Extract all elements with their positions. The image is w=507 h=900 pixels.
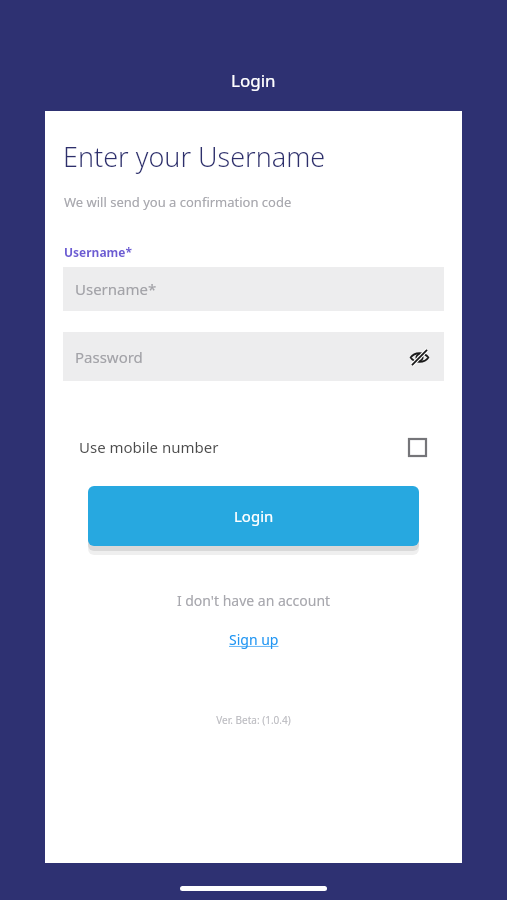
button[interactable]: Password	[63, 332, 444, 381]
staticText: Password	[75, 347, 143, 367]
button[interactable]: Username*	[63, 267, 444, 311]
staticText: Sign up	[229, 630, 279, 649]
button[interactable]: Sign up	[223, 628, 285, 651]
staticText: We will send you a confirmation code	[64, 193, 292, 211]
button[interactable]: Login	[88, 486, 419, 546]
staticText: I don't have an account	[45, 591, 462, 610]
staticText: Enter your Username	[63, 138, 326, 175]
staticText: Use mobile number	[79, 437, 219, 457]
staticText: Login	[234, 506, 274, 526]
button[interactable]: Show password	[404, 342, 434, 372]
button[interactable]: Use mobile number	[63, 428, 444, 466]
staticText: Ver. Beta: (1.0.4)	[45, 713, 462, 727]
staticText: Username*	[75, 279, 157, 299]
staticText: Username*	[64, 244, 132, 260]
staticText: Login	[231, 69, 276, 92]
